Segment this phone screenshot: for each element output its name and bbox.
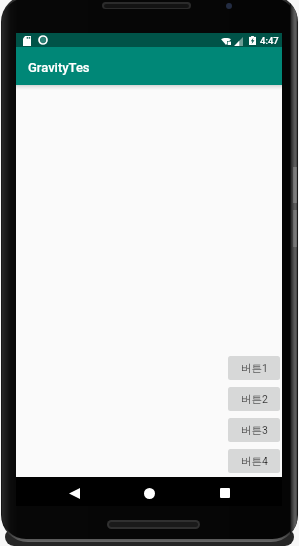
button[interactable]: 버튼2	[228, 387, 280, 411]
staticText: 버튼1	[241, 362, 268, 375]
staticText: 버튼3	[241, 424, 268, 437]
staticText: 버튼2	[241, 393, 268, 406]
button[interactable]: 버튼4	[228, 449, 280, 473]
staticText: 버튼4	[241, 455, 268, 468]
button[interactable]: 버튼1	[228, 356, 280, 380]
button[interactable]: 버튼3	[228, 418, 280, 442]
button[interactable]: Recent apps	[209, 485, 241, 501]
button[interactable]: Home	[133, 485, 165, 501]
button[interactable]: GravityTes	[16, 47, 282, 85]
staticText: 4:47	[260, 35, 279, 46]
staticText: GravityTes	[28, 60, 90, 75]
button[interactable]: Back	[58, 485, 90, 501]
